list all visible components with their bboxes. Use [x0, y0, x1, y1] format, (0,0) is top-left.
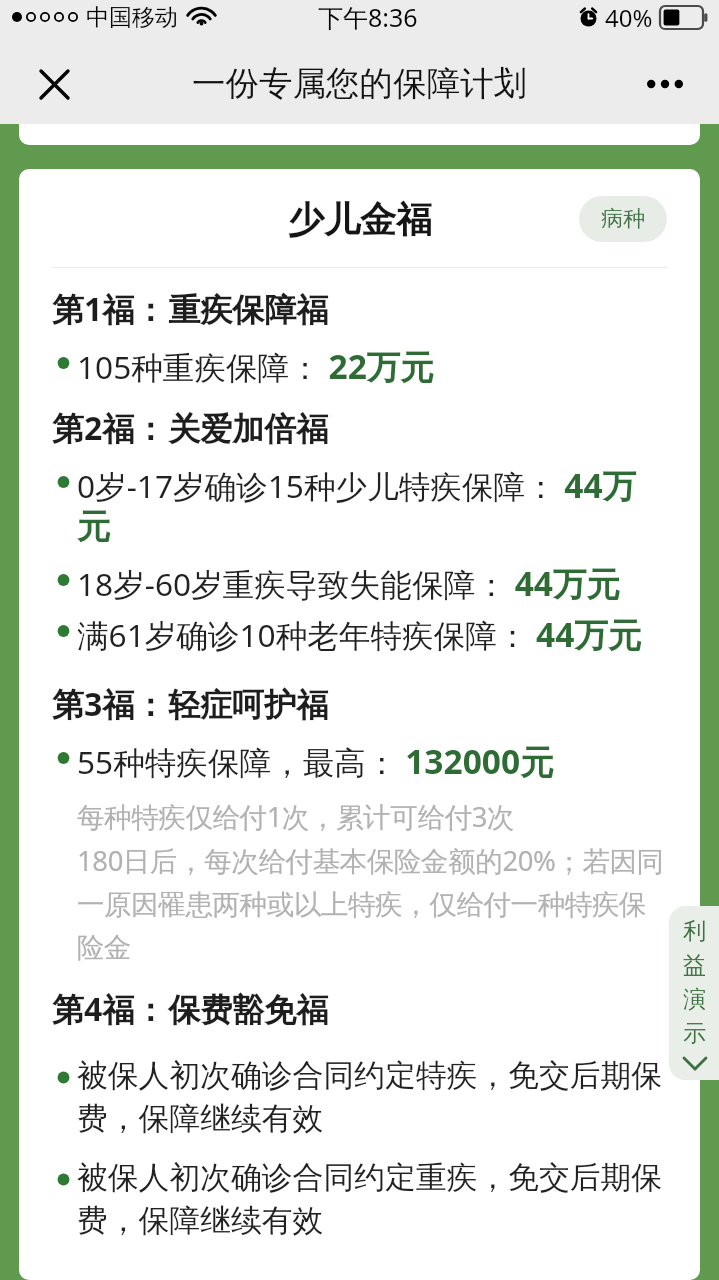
button[interactable]: 利 益 演 示 — [669, 906, 719, 1080]
button[interactable]: Close — [30, 60, 78, 108]
button[interactable]: 病种 — [579, 196, 667, 242]
staticText: 第3福： 轻症呵护福 — [52, 682, 329, 726]
staticText: 病种 — [601, 205, 645, 233]
staticText: 18岁-60岁重疾导致失能保障： 44万元 — [77, 560, 621, 606]
staticText: 0岁-17岁确诊15种少儿特疾保障： 44万元 — [77, 462, 667, 548]
staticText: 105种重疾保障： 22万元 — [77, 343, 434, 389]
staticText: 第2福： 关爱加倍福 — [52, 406, 329, 450]
staticText: 第4福： 保费豁免福 — [52, 987, 329, 1031]
staticText: 一份专属您的保障计划 — [192, 63, 527, 105]
staticText: 少儿金福 — [288, 197, 432, 242]
staticText: 每种特疾仅给付1次，累计可给付3次 180日后，每次给付基本保险金额的20%；若… — [77, 798, 667, 965]
staticText: 第1福： 重疾保障福 — [52, 287, 329, 331]
button[interactable]: More options — [640, 59, 690, 109]
staticText: 55种特疾保障，最高： 132000元 — [77, 738, 554, 784]
staticText: 利 益 演 示 — [683, 917, 706, 1048]
staticText: 下午8:36 — [318, 0, 418, 34]
staticText: 40% — [605, 1, 653, 34]
staticText: 满61岁确诊10种老年特疾保障： 44万元 — [77, 611, 642, 657]
staticText: 中国移动 — [86, 3, 178, 32]
staticText: 被保人初次确诊合同约定重疾，免交后期保费，保障继续有效 — [77, 1158, 667, 1240]
staticText: 被保人初次确诊合同约定特疾，免交后期保费，保障继续有效 — [77, 1056, 667, 1138]
